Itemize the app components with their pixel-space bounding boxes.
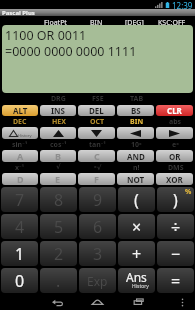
staticText: n! xyxy=(133,163,140,171)
staticText: 5 xyxy=(54,216,64,238)
staticText: × xyxy=(132,216,142,238)
button[interactable]: 2 xyxy=(40,241,77,266)
staticText: + xyxy=(132,243,142,265)
staticText: D xyxy=(17,173,24,185)
staticText: % xyxy=(185,187,192,197)
staticText: cos⁻¹ xyxy=(50,140,67,148)
button[interactable]: 4 xyxy=(1,214,38,239)
staticText: [DEG] xyxy=(125,18,144,25)
staticText: DEC xyxy=(13,117,27,125)
staticText: Pascal Plus xyxy=(2,9,35,16)
button[interactable]: Right xyxy=(156,127,193,139)
staticText: INS xyxy=(51,105,66,116)
button[interactable]: 5 xyxy=(40,214,77,239)
staticText: OCT xyxy=(90,117,105,125)
staticText: ) xyxy=(173,189,178,211)
staticText: FSE xyxy=(92,94,104,103)
staticText: DRG xyxy=(51,94,66,103)
button[interactable]: INS xyxy=(40,105,76,116)
button[interactable]: AND xyxy=(117,150,154,162)
button[interactable]: Recents xyxy=(123,294,153,310)
button[interactable]: XOR xyxy=(156,173,193,185)
button[interactable]: E xyxy=(40,173,76,185)
button[interactable]: Back xyxy=(42,294,72,310)
button[interactable]: Left xyxy=(117,127,154,139)
button[interactable]: = xyxy=(157,268,194,293)
staticText: . xyxy=(56,270,61,292)
button[interactable]: History xyxy=(2,127,38,139)
staticText: ( xyxy=(134,189,139,211)
staticText: =0000 0000 0000 1111 xyxy=(5,43,137,60)
staticText: − xyxy=(171,243,181,265)
staticText: CLR xyxy=(167,105,182,116)
button[interactable]: − xyxy=(157,241,194,266)
staticText: A xyxy=(17,150,24,162)
staticText: BS xyxy=(131,105,141,116)
staticText: sin⁻¹ xyxy=(12,140,28,148)
staticText: ÷ xyxy=(171,216,181,238)
staticText: TAB xyxy=(130,94,144,103)
button[interactable]: ) xyxy=(157,187,194,212)
button[interactable]: D xyxy=(2,173,38,185)
button[interactable]: Home xyxy=(82,294,112,310)
staticText: 3 xyxy=(93,243,103,265)
button[interactable]: ÷ xyxy=(157,214,194,239)
button[interactable]: BS xyxy=(117,105,154,116)
button[interactable]: ( xyxy=(118,187,155,212)
staticText: DMS xyxy=(168,163,184,171)
staticText: KSC:OFF xyxy=(158,18,186,25)
button[interactable]: Up xyxy=(40,127,76,139)
staticText: 6 xyxy=(93,216,103,238)
staticText: 9 xyxy=(93,189,103,211)
button[interactable]: + xyxy=(118,241,155,266)
button[interactable]: NOT xyxy=(117,173,154,185)
button[interactable]: C xyxy=(78,150,115,162)
staticText: HEX xyxy=(52,117,66,125)
button[interactable]: Down xyxy=(78,127,115,139)
staticText: 10ˣ xyxy=(131,140,142,148)
staticText: BIN xyxy=(90,18,103,25)
staticText: √ xyxy=(56,163,61,171)
button[interactable]: Menu xyxy=(172,294,192,310)
staticText: BIN xyxy=(130,117,144,125)
button[interactable]: 0 xyxy=(1,268,38,293)
staticText: F xyxy=(94,173,99,185)
staticText: 0 xyxy=(15,270,25,292)
button[interactable]: F xyxy=(78,173,115,185)
button[interactable]: B xyxy=(40,150,76,162)
button[interactable]: A xyxy=(2,150,38,162)
staticText: NOT xyxy=(127,174,145,185)
staticText: OR xyxy=(169,151,181,162)
button[interactable]: . xyxy=(40,268,77,293)
button[interactable]: 1 xyxy=(1,241,38,266)
staticText: C xyxy=(94,150,100,162)
staticText: ˣ√ xyxy=(94,163,102,171)
staticText: E xyxy=(55,173,61,185)
staticText: 1100 OR 0011 xyxy=(5,27,87,44)
staticText: DEL xyxy=(89,105,104,116)
staticText: History xyxy=(18,133,32,138)
staticText: tan⁻¹ xyxy=(89,140,106,148)
button[interactable]: 8 xyxy=(40,187,77,212)
staticText: History xyxy=(132,283,149,290)
button[interactable]: 9 xyxy=(79,187,116,212)
staticText: 4 xyxy=(15,216,25,238)
staticText: 1 xyxy=(15,243,25,265)
button[interactable]: 7 xyxy=(1,187,38,212)
button[interactable]: Exp xyxy=(79,268,116,293)
button[interactable]: × xyxy=(118,214,155,239)
staticText: 2 xyxy=(54,243,64,265)
button[interactable]: OR xyxy=(156,150,193,162)
staticText: B xyxy=(55,150,61,162)
button[interactable]: 3 xyxy=(79,241,116,266)
button[interactable]: ALT xyxy=(2,105,38,116)
staticText: 7 xyxy=(15,189,25,211)
staticText: AND xyxy=(127,151,145,162)
button[interactable]: DEL xyxy=(78,105,115,116)
button[interactable]: CLR xyxy=(156,105,193,116)
staticText: ALT xyxy=(13,105,28,116)
staticText: Exp xyxy=(87,273,108,289)
button[interactable]: Ans xyxy=(118,268,155,293)
button[interactable]: 6 xyxy=(79,214,116,239)
staticText: x⁻¹ xyxy=(15,163,25,171)
